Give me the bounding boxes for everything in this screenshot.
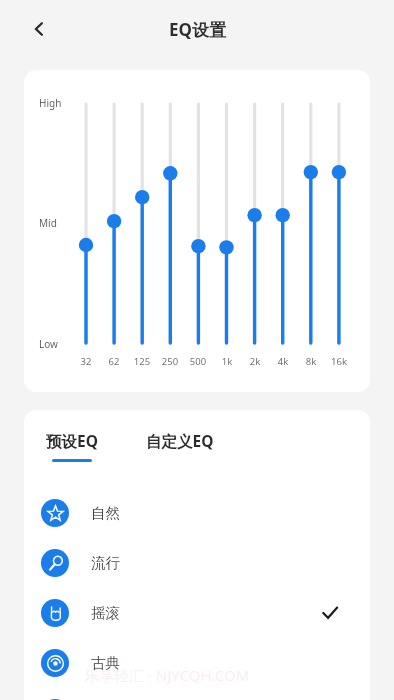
staticText: 32 <box>72 355 100 368</box>
button[interactable]: 流行 <box>24 538 370 588</box>
button[interactable]: 自然 <box>24 488 370 538</box>
staticText: 1k <box>213 355 241 368</box>
button[interactable]: Back <box>22 12 56 46</box>
staticText: 自定义EQ <box>146 430 214 451</box>
button[interactable]: 预设EQ <box>44 430 100 462</box>
staticText: 流行 <box>91 554 120 572</box>
button[interactable]: 古典 <box>24 638 370 688</box>
button[interactable]: 爵士 <box>24 688 370 700</box>
staticText: EQ设置 <box>169 18 226 41</box>
button[interactable]: 摇滚 <box>24 588 370 638</box>
staticText: 125 <box>128 355 156 368</box>
staticText: 16k <box>325 355 353 368</box>
button[interactable]: 自定义EQ <box>144 430 216 451</box>
staticText: 62 <box>100 355 128 368</box>
staticText: 4k <box>269 355 297 368</box>
staticText: 250 <box>156 355 184 368</box>
staticText: 预设EQ <box>46 430 98 451</box>
staticText: 8k <box>297 355 325 368</box>
staticText: Mid <box>39 216 57 230</box>
staticText: 自然 <box>91 504 120 522</box>
staticText: 500 <box>184 355 212 368</box>
staticText: High <box>39 96 62 110</box>
staticText: 古典 <box>91 654 120 672</box>
staticText: Low <box>39 337 58 351</box>
staticText: 乐享轻汇 · NJYCQH.COM <box>84 665 250 685</box>
staticText: 摇滚 <box>91 604 120 622</box>
staticText: 2k <box>241 355 269 368</box>
